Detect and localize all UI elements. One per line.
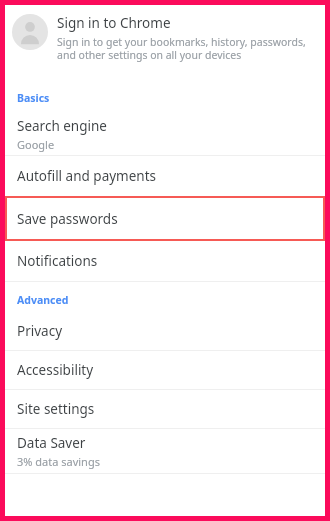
staticText: Accessibility xyxy=(17,361,94,379)
staticText: Save passwords xyxy=(17,210,118,228)
staticText: Basics xyxy=(17,91,50,105)
button[interactable]: Save passwords xyxy=(5,196,325,241)
staticText: Google xyxy=(17,137,55,152)
staticText: Data Saver xyxy=(17,434,86,452)
staticText: Sign in to get your bookmarks, history, … xyxy=(57,35,315,62)
staticText: Advanced xyxy=(17,293,69,307)
button[interactable]: Privacy xyxy=(5,312,325,350)
button[interactable]: Account avatar xyxy=(5,5,325,81)
other: Account avatar xyxy=(12,14,48,50)
button[interactable]: Accessibility xyxy=(5,351,325,389)
button[interactable]: Notifications xyxy=(5,241,325,281)
staticText: Site settings xyxy=(17,400,95,418)
button[interactable]: Search engine xyxy=(5,114,325,155)
staticText: Privacy xyxy=(17,322,63,340)
staticText: 3% data savings xyxy=(17,454,100,469)
staticText: Autofill and payments xyxy=(17,167,157,185)
staticText: Notifications xyxy=(17,252,98,270)
button[interactable]: Site settings xyxy=(5,390,325,428)
button[interactable]: Data Saver xyxy=(5,429,325,473)
staticText: Sign in to Chrome xyxy=(57,14,171,32)
staticText: Search engine xyxy=(17,117,107,135)
button[interactable]: Autofill and payments xyxy=(5,156,325,196)
